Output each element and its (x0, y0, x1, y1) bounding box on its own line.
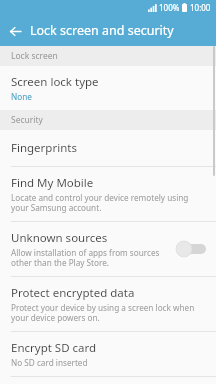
staticText: Lock screen and security (30, 22, 174, 39)
button[interactable]: Fingerprints (0, 130, 216, 166)
button[interactable]: Protect encrypted data (0, 277, 216, 331)
button[interactable]: Encrypt SD card (0, 332, 216, 376)
button[interactable]: Unknown sources toggle (176, 241, 206, 257)
staticText: Protect your device by using a screen lo… (11, 302, 206, 323)
button[interactable]: Unknown sources (0, 222, 216, 276)
staticText: Lock screen (11, 50, 58, 62)
staticText: Protect encrypted data (11, 285, 135, 301)
button[interactable]: Back (0, 16, 30, 46)
staticText: 100% (159, 2, 180, 13)
staticText: Fingerprints (11, 140, 77, 156)
staticText: Screen lock type (11, 74, 99, 90)
button[interactable]: Find My Mobile (0, 167, 216, 221)
staticText: Allow installation of apps from sources … (11, 247, 170, 268)
staticText: No SD card inserted (11, 357, 88, 368)
staticText: Security (11, 114, 43, 126)
staticText: Find My Mobile (11, 175, 94, 191)
staticText: None (11, 91, 32, 102)
staticText: Encrypt SD card (11, 340, 97, 356)
staticText: Unknown sources (11, 230, 108, 246)
staticText: 10:00 (190, 2, 211, 13)
button[interactable]: Screen lock type (0, 66, 216, 110)
staticText: Locate and control your device remotely … (11, 192, 206, 213)
